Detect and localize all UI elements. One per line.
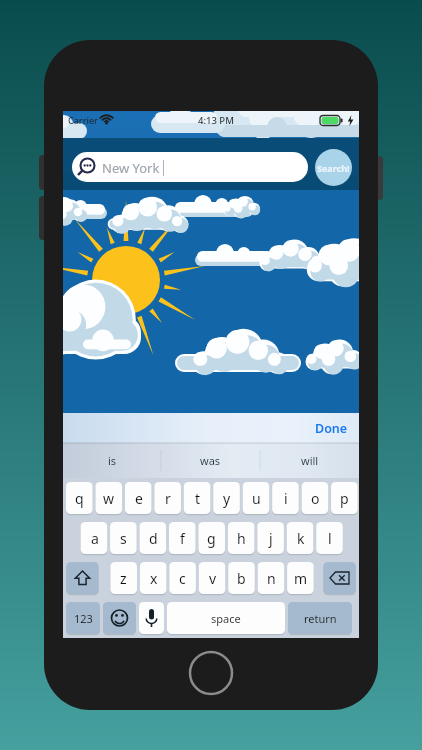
button[interactable]: j: [257, 522, 284, 554]
button[interactable]: z: [110, 562, 137, 594]
staticText: Carrier: [68, 114, 98, 126]
button[interactable]: t: [184, 482, 211, 514]
staticText: q: [75, 489, 84, 508]
button[interactable]: m: [287, 562, 314, 594]
staticText: e: [135, 489, 143, 508]
button[interactable]: p: [331, 482, 358, 514]
staticText: b: [237, 569, 246, 588]
staticText: 4:13 PM: [198, 114, 234, 127]
staticText: k: [297, 529, 305, 548]
staticText: Search!: [317, 162, 350, 174]
staticText: c: [179, 569, 186, 588]
button[interactable]: Backspace: [323, 562, 355, 594]
button[interactable]: l: [316, 522, 343, 554]
button[interactable]: d: [140, 522, 167, 554]
staticText: t: [195, 489, 201, 508]
staticText: p: [340, 489, 349, 508]
staticText: is: [108, 453, 117, 468]
button[interactable]: v: [199, 562, 226, 594]
staticText: u: [252, 489, 261, 508]
button[interactable]: 123: [66, 602, 100, 634]
button[interactable]: q: [66, 482, 93, 514]
button[interactable]: k: [287, 522, 314, 554]
button[interactable]: space: [167, 602, 285, 634]
staticText: space: [211, 611, 241, 626]
button[interactable]: Shift: [66, 562, 98, 594]
button[interactable]: will: [260, 443, 359, 478]
staticText: o: [311, 489, 320, 508]
staticText: l: [328, 529, 332, 548]
button[interactable]: c: [169, 562, 196, 594]
button[interactable]: i: [272, 482, 299, 514]
staticText: 123: [74, 611, 93, 626]
button[interactable]: Emoji: [103, 602, 136, 634]
staticText: r: [165, 489, 171, 508]
button[interactable]: f: [169, 522, 196, 554]
button[interactable]: y: [213, 482, 240, 514]
staticText: g: [207, 529, 216, 548]
button[interactable]: was: [161, 443, 260, 478]
staticText: m: [294, 569, 308, 588]
button[interactable]: b: [228, 562, 255, 594]
staticText: New York: [102, 159, 160, 177]
button[interactable]: w: [95, 482, 122, 514]
staticText: h: [237, 529, 246, 548]
button[interactable]: a: [81, 522, 108, 554]
button[interactable]: s: [110, 522, 137, 554]
staticText: was: [200, 453, 221, 468]
staticText: v: [209, 569, 217, 588]
staticText: a: [91, 529, 99, 548]
button[interactable]: x: [140, 562, 167, 594]
staticText: Done: [315, 420, 348, 437]
button[interactable]: u: [243, 482, 270, 514]
button[interactable]: n: [258, 562, 285, 594]
staticText: s: [120, 529, 127, 548]
button[interactable]: e: [125, 482, 152, 514]
button[interactable]: Done: [309, 418, 353, 438]
button[interactable]: r: [154, 482, 181, 514]
button[interactable]: o: [302, 482, 329, 514]
staticText: return: [304, 611, 337, 626]
button[interactable]: g: [198, 522, 225, 554]
button[interactable]: return: [288, 602, 352, 634]
button[interactable]: New York: [72, 152, 308, 182]
staticText: z: [120, 569, 127, 588]
button[interactable]: h: [228, 522, 255, 554]
button[interactable]: Dictation: [139, 602, 164, 634]
button[interactable]: Search!: [315, 149, 352, 186]
staticText: j: [269, 529, 273, 548]
staticText: n: [267, 569, 276, 588]
staticText: y: [223, 489, 231, 508]
staticText: will: [301, 453, 319, 468]
staticText: f: [180, 529, 185, 548]
staticText: w: [103, 489, 115, 508]
staticText: x: [150, 569, 158, 588]
button[interactable]: is: [63, 443, 161, 478]
staticText: d: [149, 529, 158, 548]
staticText: i: [284, 489, 288, 508]
